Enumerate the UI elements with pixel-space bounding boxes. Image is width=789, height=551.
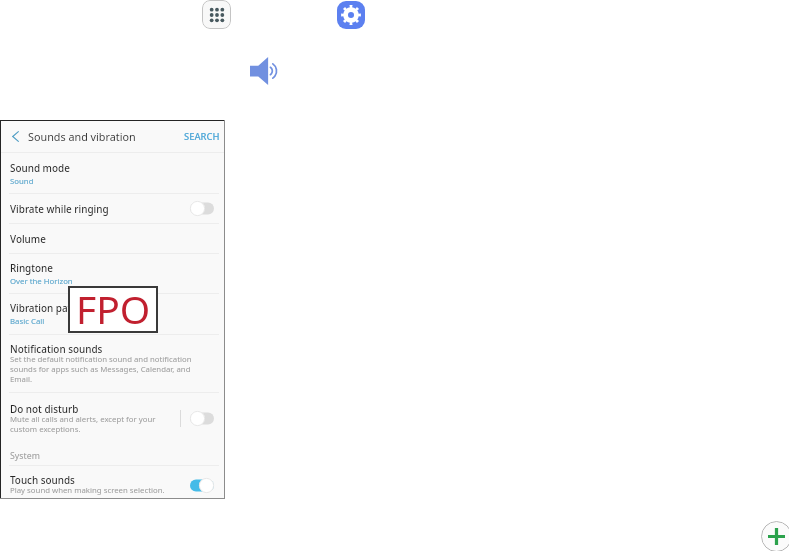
button[interactable]: Notification sounds — [0, 335, 225, 392]
button[interactable]: Add — [761, 521, 789, 551]
staticText: Vibration pattern — [10, 301, 92, 314]
staticText: Ringtone — [10, 261, 53, 274]
button[interactable]: Sounds and vibration — [0, 120, 225, 152]
staticText: System — [10, 450, 40, 462]
button[interactable]: Vibration pattern — [0, 294, 225, 334]
staticText: Mute all calls and alerts, except for yo… — [10, 414, 174, 434]
staticText: Sound mode — [10, 161, 70, 174]
button[interactable]: Apps — [202, 0, 231, 29]
button[interactable]: Touch sounds — [0, 469, 225, 501]
staticText: SEARCH — [184, 130, 220, 143]
staticText: Set the default notification sound and n… — [10, 354, 198, 384]
staticText: Sounds and vibration — [28, 129, 136, 144]
staticText: Play sound when making screen selection. — [10, 485, 165, 496]
staticText: Notification sounds — [10, 342, 103, 355]
button[interactable]: Do not disturb — [0, 394, 225, 442]
staticText: Basic Call — [10, 316, 45, 327]
button[interactable]: Volume — [250, 57, 279, 85]
staticText: Vibrate while ringing — [10, 202, 109, 215]
button[interactable]: Vibrate while ringing — [0, 194, 225, 223]
button[interactable]: Ringtone — [0, 254, 225, 293]
button[interactable]: Sound mode — [0, 154, 225, 194]
staticText: FPO — [76, 282, 151, 329]
staticText: Over the Horizon — [10, 276, 73, 287]
staticText: Volume — [10, 232, 46, 245]
staticText: Sound — [10, 176, 34, 187]
button[interactable]: Volume — [0, 224, 225, 253]
staticText: Touch sounds — [10, 473, 75, 486]
button[interactable]: Settings — [337, 1, 365, 29]
staticText: Do not disturb — [10, 402, 79, 415]
